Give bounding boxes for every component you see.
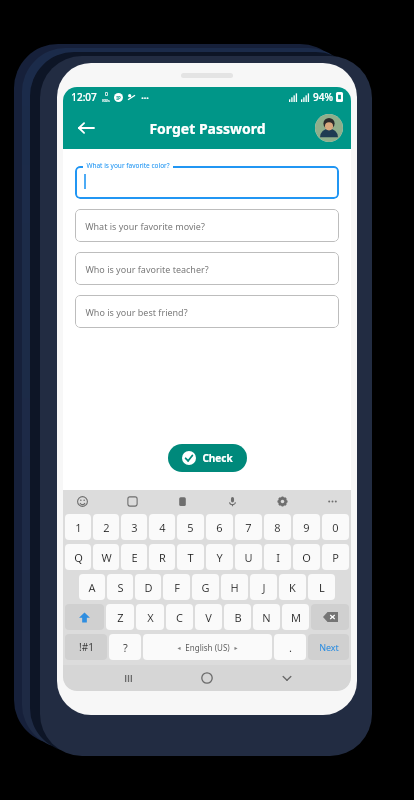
button[interactable]: 2 — [93, 514, 119, 540]
staticText: Check — [202, 451, 233, 465]
button[interactable]: Clipboard — [173, 492, 191, 510]
button[interactable]: R — [149, 544, 175, 570]
button[interactable]: T — [177, 544, 204, 570]
button[interactable]: C — [166, 604, 193, 630]
button[interactable]: Q — [65, 544, 91, 570]
staticText: ? — [123, 640, 128, 655]
button[interactable]: Y — [206, 544, 233, 570]
staticText: P — [332, 550, 339, 565]
staticText: Z — [117, 610, 124, 625]
button[interactable]: 1 — [65, 514, 91, 540]
staticText: 94% — [313, 90, 333, 104]
button[interactable]: Check — [168, 444, 247, 472]
button[interactable]: K — [279, 574, 306, 600]
button[interactable]: L — [308, 574, 335, 600]
button[interactable]: 5 — [177, 514, 204, 540]
staticText: 0 — [332, 520, 339, 535]
staticText: T — [187, 550, 194, 565]
staticText: S — [117, 580, 124, 595]
button[interactable]: O — [293, 544, 320, 570]
staticText: Who is your best friend? — [85, 306, 188, 318]
button[interactable]: W — [93, 544, 119, 570]
button[interactable]: 3 — [121, 514, 147, 540]
staticText: !#1 — [79, 640, 94, 654]
staticText: ▸ — [234, 644, 238, 651]
staticText: K — [289, 580, 296, 595]
staticText: 4 — [159, 520, 166, 535]
button[interactable]: Profile — [315, 114, 343, 142]
button[interactable]: V — [195, 604, 222, 630]
staticText: English (US) — [185, 642, 230, 653]
button[interactable]: E — [121, 544, 147, 570]
button[interactable]: What is your favorite movie? — [75, 209, 339, 242]
button[interactable]: Keyboard settings — [273, 492, 291, 510]
staticText: N — [262, 610, 271, 625]
button[interactable]: F — [163, 574, 190, 600]
button[interactable]: !#1 — [65, 634, 107, 660]
button[interactable]: Who is your favorite teacher? — [75, 252, 339, 285]
staticText: 7 — [245, 520, 252, 535]
button[interactable]: Next — [308, 634, 349, 660]
staticText: 5 — [187, 520, 194, 535]
staticText: 0 — [105, 91, 108, 98]
staticText: ··· — [141, 91, 149, 103]
button[interactable]: U — [235, 544, 262, 570]
button[interactable]: B — [224, 604, 251, 630]
button[interactable]: I — [264, 544, 291, 570]
staticText: 3 — [131, 520, 138, 535]
button[interactable] — [75, 166, 339, 199]
staticText: A — [88, 580, 96, 595]
button[interactable]: More options — [323, 492, 341, 510]
button[interactable]: D — [135, 574, 161, 600]
staticText: X — [147, 610, 154, 625]
button[interactable]: Back — [71, 113, 101, 143]
button[interactable]: H — [221, 574, 248, 600]
button[interactable]: 7 — [235, 514, 262, 540]
button[interactable]: 4 — [149, 514, 175, 540]
button[interactable]: 6 — [206, 514, 233, 540]
button[interactable]: . — [274, 634, 306, 660]
button[interactable]: Home — [192, 665, 222, 691]
staticText: O — [302, 550, 311, 565]
button[interactable]: ? — [109, 634, 141, 660]
staticText: Forget Password — [149, 119, 266, 138]
staticText: L — [319, 580, 325, 595]
button[interactable]: Stickers — [123, 492, 141, 510]
staticText: M — [291, 610, 301, 625]
staticText: 12:07 — [71, 90, 97, 104]
button[interactable]: Recents — [113, 665, 143, 691]
button[interactable]: Hide keyboard — [272, 665, 302, 691]
staticText: Q — [74, 550, 83, 565]
staticText: Y — [216, 550, 223, 565]
button[interactable]: G — [192, 574, 219, 600]
button[interactable]: M — [282, 604, 309, 630]
staticText: Next — [319, 641, 339, 653]
staticText: G — [201, 580, 210, 595]
button[interactable]: S — [107, 574, 133, 600]
button[interactable]: Shift — [65, 604, 104, 630]
button[interactable]: Space — [143, 634, 272, 660]
button[interactable]: Who is your best friend? — [75, 295, 339, 328]
button[interactable]: P — [322, 544, 349, 570]
button[interactable]: Voice input — [223, 492, 241, 510]
button[interactable]: 8 — [264, 514, 291, 540]
staticText: R — [159, 550, 166, 565]
staticText: J — [262, 580, 266, 595]
staticText: What is your favorite color? — [86, 161, 170, 170]
button[interactable]: Z — [106, 604, 134, 630]
staticText: ◂ — [177, 644, 181, 651]
button[interactable]: 9 — [293, 514, 320, 540]
staticText: KB/s — [102, 98, 110, 103]
button[interactable]: J — [250, 574, 277, 600]
button[interactable]: 0 — [322, 514, 349, 540]
button[interactable]: A — [79, 574, 105, 600]
staticText: C — [176, 610, 183, 625]
button[interactable]: N — [253, 604, 280, 630]
button[interactable]: X — [136, 604, 164, 630]
staticText: I — [276, 550, 280, 565]
staticText: IP — [116, 95, 121, 101]
staticText: E — [131, 550, 138, 565]
button[interactable]: Backspace — [311, 604, 349, 630]
staticText: 6 — [216, 520, 223, 535]
button[interactable]: Emoji — [73, 492, 91, 510]
